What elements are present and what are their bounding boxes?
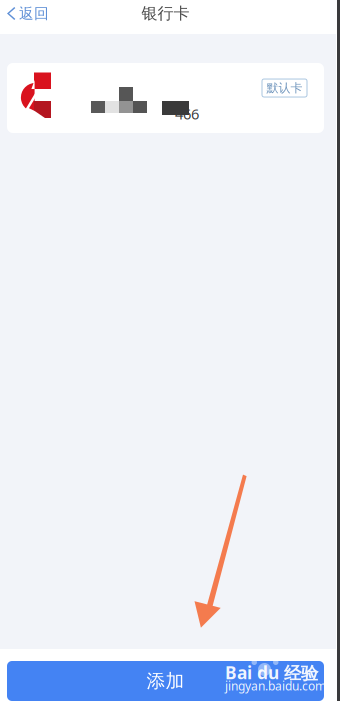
staticText: 添加 xyxy=(146,669,184,692)
staticText: jingyan.baidu.com xyxy=(225,678,326,694)
button[interactable]: 466 xyxy=(7,63,324,133)
staticText: 466 xyxy=(175,104,199,123)
button[interactable]: 添加 xyxy=(7,661,324,701)
staticText: Bai du 经验 xyxy=(225,661,318,684)
staticText: 默认卡 xyxy=(266,81,302,95)
staticText: 银行卡 xyxy=(141,4,189,23)
button[interactable]: 返回 xyxy=(0,0,57,27)
staticText: 返回 xyxy=(19,4,49,22)
